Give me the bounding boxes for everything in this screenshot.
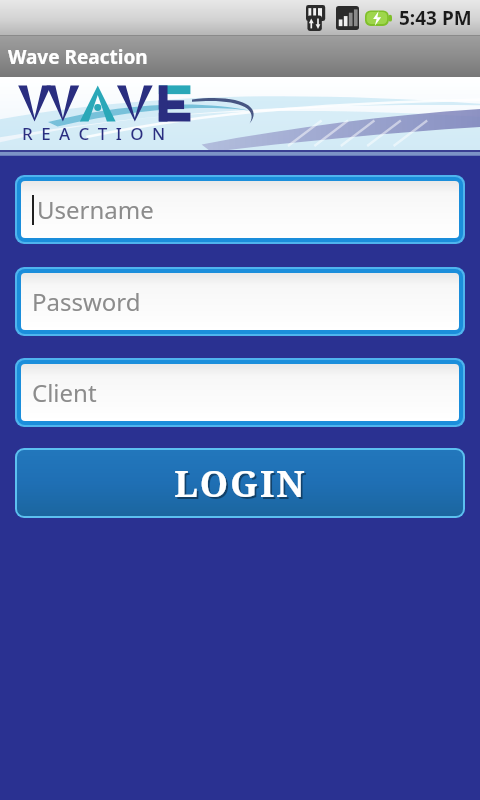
button[interactable]: Password: [21, 273, 459, 330]
staticText: Client: [32, 376, 97, 409]
staticText: LOGIN: [174, 459, 307, 508]
staticText: Password: [32, 285, 141, 318]
staticText: Wave Reaction: [8, 44, 148, 70]
staticText: R E A C T I O N: [22, 122, 168, 145]
staticText: LOGIN: [176, 461, 309, 510]
button[interactable]: Client: [21, 364, 459, 421]
staticText: 5:43 PM: [399, 5, 472, 31]
staticText: Username: [37, 193, 154, 226]
button[interactable]: LOGIN: [17, 450, 463, 516]
button[interactable]: Username: [21, 181, 459, 238]
